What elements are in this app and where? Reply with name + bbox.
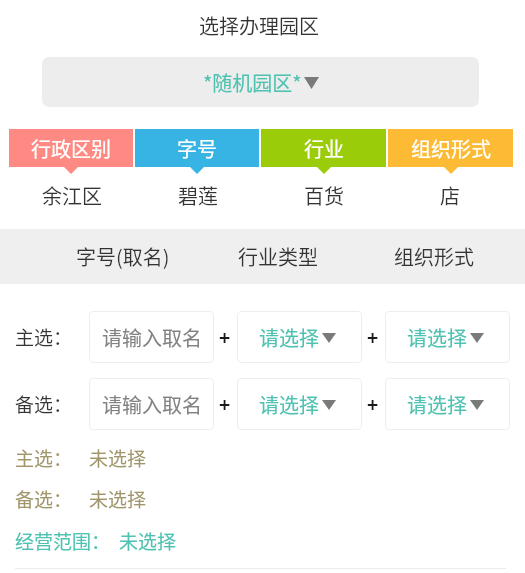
button[interactable]: 组织形式 — [388, 129, 513, 167]
staticText: 百货 — [304, 181, 344, 210]
staticText: 请输入取名 — [102, 323, 202, 352]
staticText: 行业类型 — [238, 242, 318, 271]
staticText: 主选： — [15, 444, 73, 472]
staticText: 行业 — [304, 134, 344, 163]
staticText: 字号 — [177, 134, 217, 163]
staticText: 请输入取名 — [102, 390, 202, 419]
staticText: 字号(取名) — [76, 242, 170, 271]
staticText: + — [367, 323, 379, 351]
staticText: 经营范围： — [15, 527, 111, 555]
staticText: 请选择 — [259, 323, 319, 352]
button[interactable]: 碧莲 — [135, 181, 261, 210]
button[interactable]: Add alternative name — [214, 311, 235, 363]
staticText: 碧莲 — [178, 181, 218, 210]
staticText: 店 — [440, 181, 460, 210]
button[interactable]: Add alternative name — [362, 378, 383, 430]
staticText: 主选： — [15, 323, 73, 351]
staticText: 备选： — [15, 390, 73, 418]
staticText: + — [219, 323, 231, 351]
button[interactable]: 店 — [387, 181, 513, 210]
staticText: 请选择 — [407, 390, 467, 419]
staticText: 请选择 — [259, 390, 319, 419]
staticText: 组织形式 — [394, 242, 474, 271]
button[interactable]: 行政区别 — [9, 129, 133, 167]
button[interactable]: 请选择 — [385, 311, 510, 363]
button[interactable]: 请输入取名 — [89, 378, 214, 430]
staticText: + — [367, 390, 379, 418]
staticText: 备选： — [15, 485, 73, 513]
button[interactable]: Add alternative name — [362, 311, 383, 363]
button[interactable]: 请选择 — [237, 378, 362, 430]
button[interactable]: 经营范围： — [0, 527, 525, 555]
button[interactable]: 请选择 — [237, 311, 362, 363]
staticText: 未选择 — [89, 444, 147, 472]
button[interactable]: 请选择 — [385, 378, 510, 430]
staticText: 未选择 — [89, 485, 147, 513]
staticText: *随机园区* — [203, 68, 302, 97]
button[interactable]: 余江区 — [9, 181, 135, 210]
staticText: 未选择 — [119, 527, 177, 555]
button[interactable]: 主选： — [0, 444, 525, 472]
button[interactable]: 行业 — [261, 129, 386, 167]
button[interactable]: 备选： — [0, 485, 525, 513]
button[interactable]: Add alternative name — [214, 378, 235, 430]
staticText: 选择办理园区 — [199, 11, 319, 40]
button[interactable]: 百货 — [261, 181, 387, 210]
staticText: 余江区 — [42, 181, 102, 210]
staticText: 行政区别 — [31, 134, 111, 163]
button[interactable]: *随机园区* — [42, 57, 479, 107]
staticText: + — [219, 390, 231, 418]
button[interactable]: 字号 — [135, 129, 259, 167]
button[interactable]: 请输入取名 — [89, 311, 214, 363]
staticText: 组织形式 — [411, 134, 491, 163]
staticText: 请选择 — [407, 323, 467, 352]
